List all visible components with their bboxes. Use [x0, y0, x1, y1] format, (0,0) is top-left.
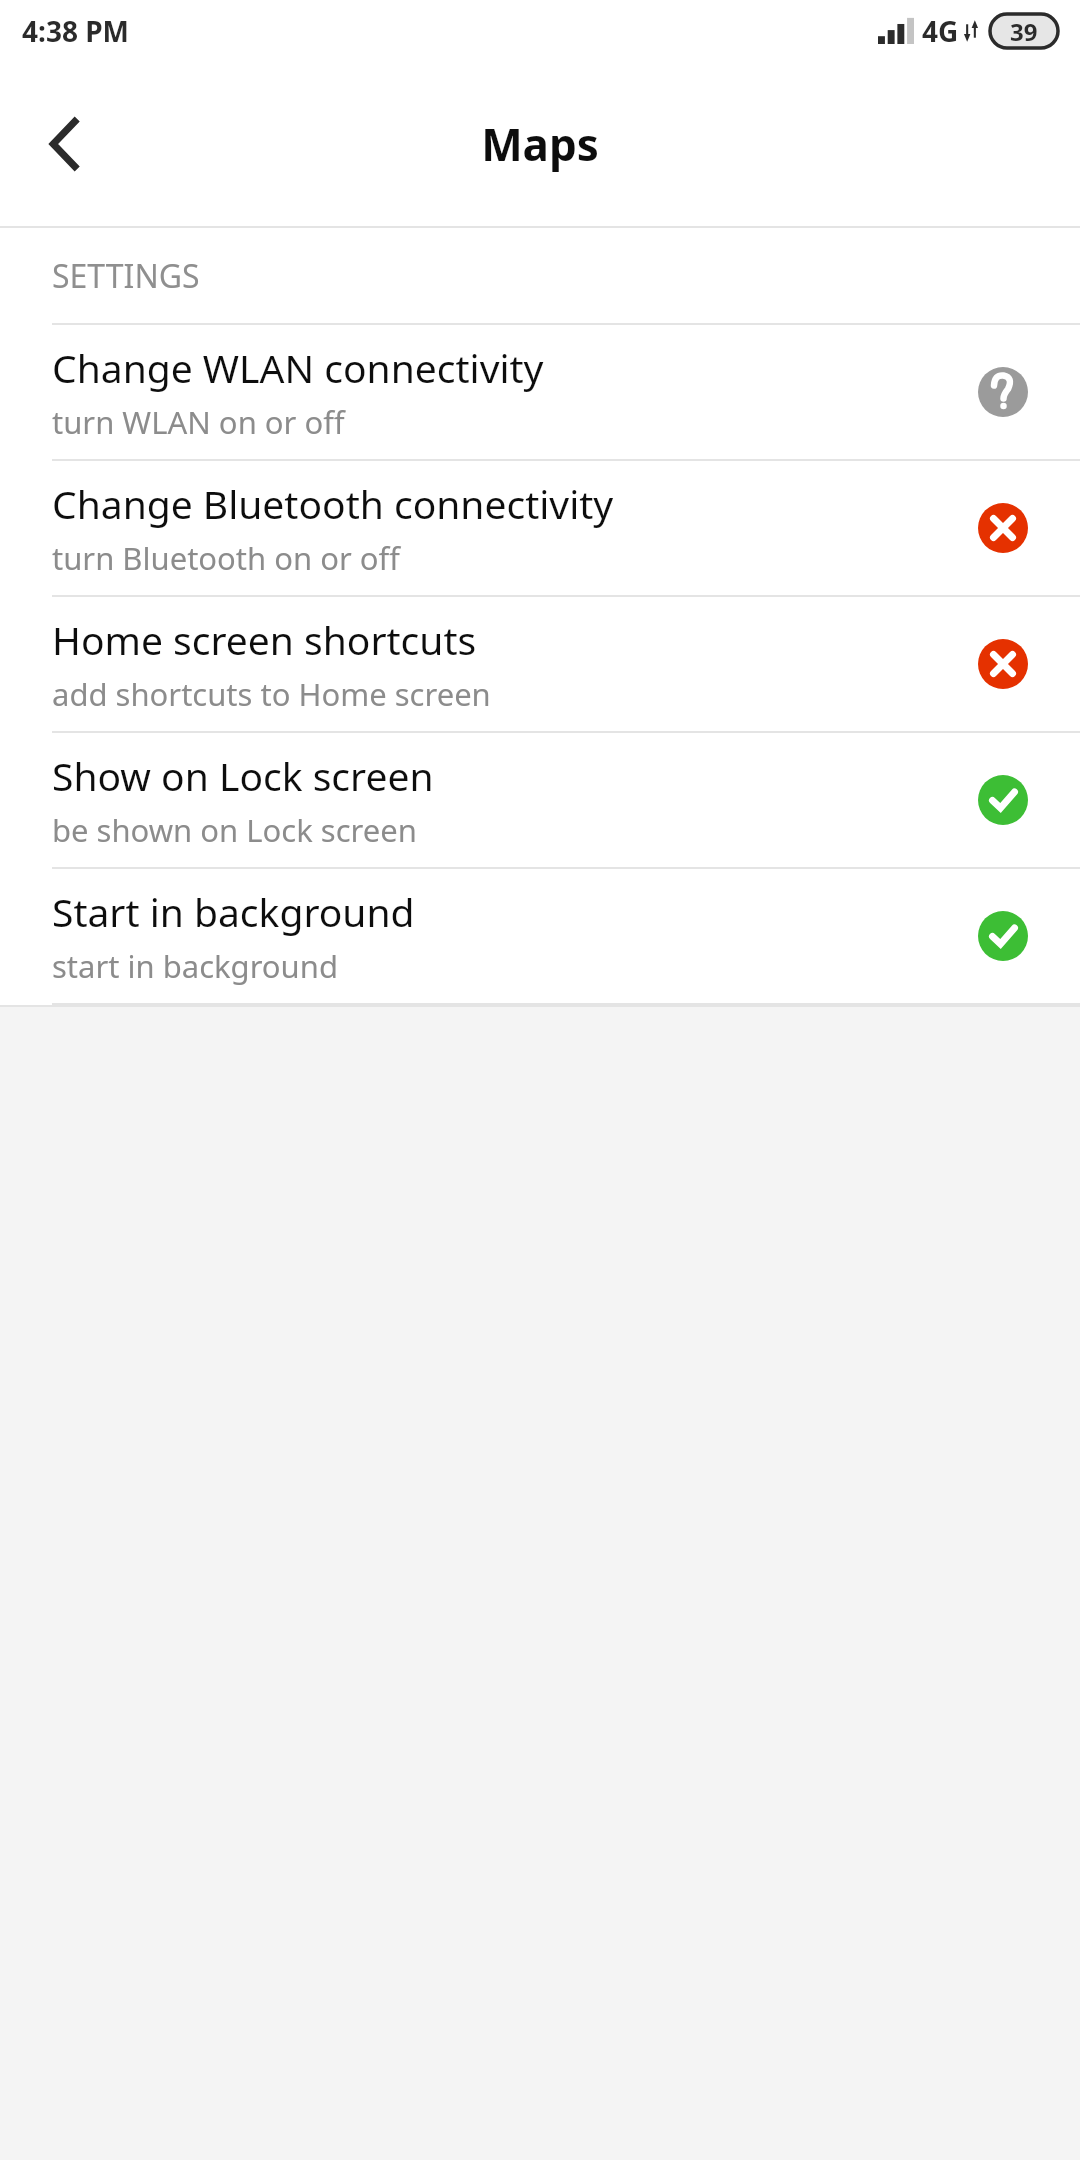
button[interactable]: Show on Lock screen	[0, 733, 1080, 869]
staticText: turn WLAN on or off	[52, 401, 345, 443]
staticText: Change Bluetooth connectivity	[52, 477, 614, 530]
staticText: Maps	[481, 114, 599, 174]
button[interactable]: Change WLAN connectivity	[0, 325, 1080, 461]
button[interactable]: Back	[22, 100, 110, 188]
staticText: 39	[1010, 15, 1038, 48]
staticText: be shown on Lock screen	[52, 809, 417, 851]
button[interactable]: Home screen shortcuts	[0, 597, 1080, 733]
staticText: add shortcuts to Home screen	[52, 673, 491, 715]
staticText: Change WLAN connectivity	[52, 341, 544, 394]
staticText: turn Bluetooth on or off	[52, 537, 400, 579]
staticText: Show on Lock screen	[52, 749, 434, 802]
staticText: 4G	[922, 12, 959, 50]
staticText: SETTINGS	[52, 254, 200, 298]
staticText: start in background	[52, 945, 338, 987]
button[interactable]: Change Bluetooth connectivity	[0, 461, 1080, 597]
button[interactable]: Start in background	[0, 869, 1080, 1005]
staticText: 4:38 PM	[22, 12, 129, 50]
staticText: Home screen shortcuts	[52, 613, 477, 666]
staticText: Start in background	[52, 885, 415, 938]
